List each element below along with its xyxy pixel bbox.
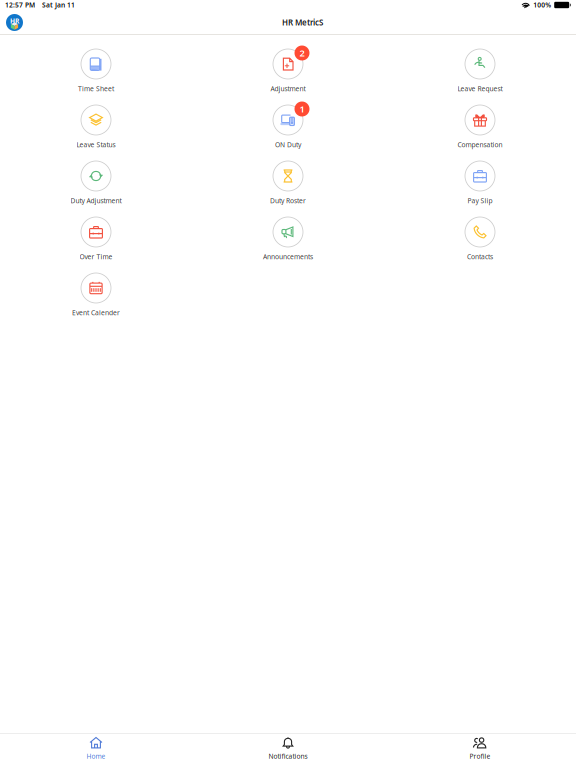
button[interactable]: Leave Request xyxy=(384,49,576,105)
staticText: Duty Adjustment xyxy=(70,196,121,205)
staticText: Duty Roster xyxy=(270,196,306,205)
button[interactable]: Home xyxy=(0,730,192,768)
button[interactable]: Profile xyxy=(384,730,576,768)
staticText: HR xyxy=(10,16,19,25)
staticText: ON Duty xyxy=(275,140,301,149)
button[interactable]: Announcements xyxy=(192,217,384,273)
staticText: Leave Status xyxy=(76,140,115,149)
button[interactable]: Over Time xyxy=(0,217,192,273)
button[interactable]: 1 xyxy=(192,105,384,161)
staticText: Pay Slip xyxy=(467,196,492,205)
staticText: Over Time xyxy=(79,252,112,261)
staticText: 2 xyxy=(299,47,304,59)
staticText: 1 xyxy=(299,103,304,115)
button[interactable]: HR Metrics home xyxy=(0,10,28,35)
staticText: Profile xyxy=(469,752,490,760)
staticText: Home xyxy=(86,752,105,760)
staticText: Announcements xyxy=(263,252,313,261)
staticText: Notifications xyxy=(268,752,307,760)
staticText: Time Sheet xyxy=(78,84,114,93)
button[interactable]: Leave Status xyxy=(0,105,192,161)
button[interactable]: Pay Slip xyxy=(384,161,576,217)
button[interactable]: Duty Adjustment xyxy=(0,161,192,217)
staticText: 100% xyxy=(533,1,551,9)
button[interactable]: Contacts xyxy=(384,217,576,273)
staticText: Adjustment xyxy=(270,84,305,93)
staticText: Sat Jan 11 xyxy=(42,1,75,9)
staticText: 12:57 PM xyxy=(5,1,35,9)
staticText: Leave Request xyxy=(457,84,502,93)
button[interactable]: Time Sheet xyxy=(0,49,192,105)
button[interactable]: Compensation xyxy=(384,105,576,161)
staticText: Contacts xyxy=(467,252,493,261)
staticText: Compensation xyxy=(457,140,502,149)
button[interactable]: Duty Roster xyxy=(192,161,384,217)
staticText: HR MetricS xyxy=(282,17,323,28)
button[interactable]: Event Calender xyxy=(0,273,192,329)
button[interactable]: Notifications xyxy=(192,730,384,768)
staticText: Event Calender xyxy=(72,308,120,317)
button[interactable]: 2 xyxy=(192,49,384,105)
